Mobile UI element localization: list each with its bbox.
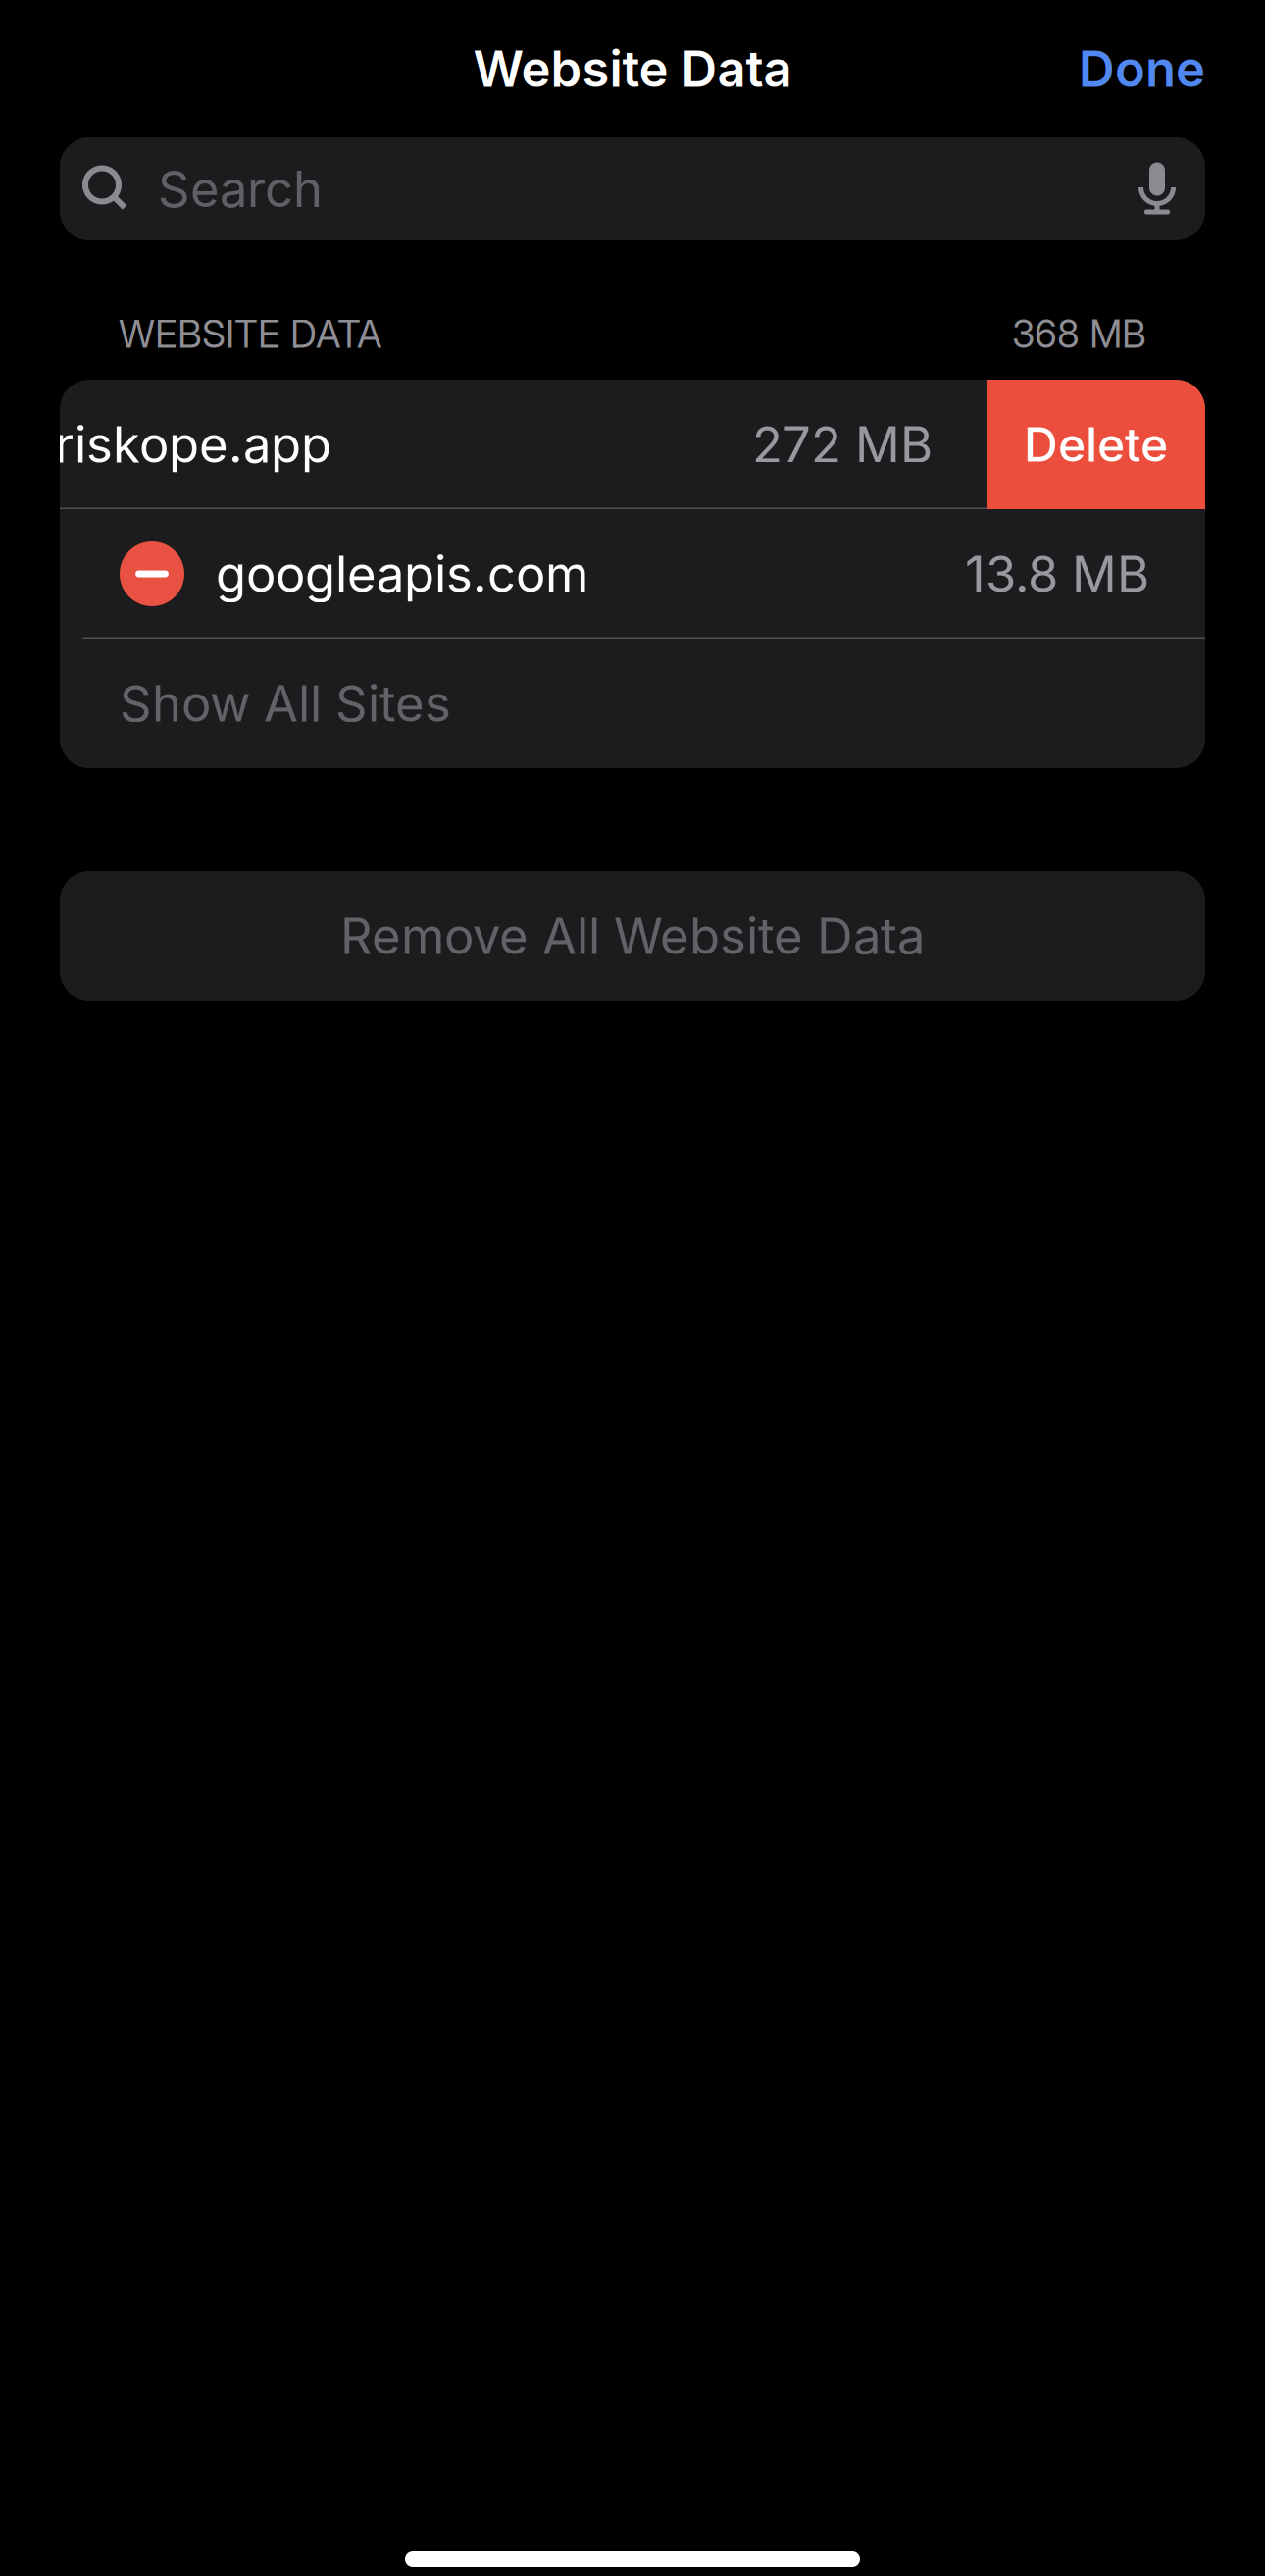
button[interactable]: Dictate	[1138, 138, 1205, 240]
staticText: Show All Sites	[120, 674, 451, 733]
staticText: riskope.app	[55, 415, 331, 474]
staticText: 368 MB	[1012, 312, 1146, 356]
button[interactable]: Delete	[987, 380, 1205, 509]
button[interactable]: Delete googleapis.com	[120, 541, 184, 606]
staticText: Delete	[1024, 417, 1168, 472]
staticText: Website Data	[473, 39, 792, 98]
button[interactable]: Remove All Website Data	[60, 871, 1205, 1001]
button[interactable]: Done	[1079, 39, 1205, 98]
staticText: Search	[158, 160, 323, 218]
staticText: Done	[1079, 39, 1205, 98]
staticText: 13.8 MB	[965, 545, 1149, 603]
staticText: 272 MB	[752, 415, 933, 474]
staticText: googleapis.com	[216, 545, 588, 603]
staticText: WEBSITE DATA	[119, 312, 381, 356]
button[interactable]: Search	[60, 137, 1205, 240]
button[interactable]: Show All Sites	[60, 639, 1205, 768]
staticText: Remove All Website Data	[340, 907, 925, 965]
